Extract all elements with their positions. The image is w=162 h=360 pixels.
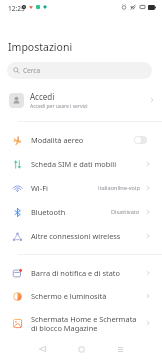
staticText: Schermo e luminosità xyxy=(31,291,142,301)
button[interactable]: Wi-Fi xyxy=(0,176,162,200)
staticText: Disattivato xyxy=(111,208,140,216)
staticText: Barra di notifica e di stato xyxy=(31,268,142,278)
button[interactable]: Schermo e luminosità xyxy=(0,284,162,308)
staticText: Accedi xyxy=(30,91,55,102)
button[interactable]: Modalità aereo toggle xyxy=(134,136,147,144)
button[interactable]: Modalità aereo xyxy=(0,128,162,152)
button[interactable]: Schermata Home e Schermata di blocco Mag… xyxy=(0,308,162,338)
button[interactable]: Cerca xyxy=(7,62,152,79)
button[interactable]: Accedi xyxy=(0,85,162,115)
staticText: Impostazioni xyxy=(8,40,73,54)
staticText: Modalità aereo xyxy=(31,135,131,145)
staticText: Scheda SIM e dati mobili xyxy=(31,159,142,169)
staticText: Altre connessioni wireless xyxy=(31,231,142,241)
button[interactable]: Back xyxy=(30,338,54,360)
staticText: Cerca xyxy=(23,66,41,75)
staticText: Bluetooth xyxy=(31,207,108,217)
staticText: italiaonline-voip xyxy=(98,184,140,192)
staticText: Schermata Home e Schermata di blocco Mag… xyxy=(31,314,142,333)
staticText: Wi-Fi xyxy=(31,183,95,193)
button[interactable]: Recents xyxy=(108,338,132,360)
button[interactable]: Home xyxy=(69,338,93,360)
button[interactable]: Scheda SIM e dati mobili xyxy=(0,152,162,176)
button[interactable]: Barra di notifica e di stato xyxy=(0,261,162,285)
button[interactable]: Altre connessioni wireless xyxy=(0,224,162,248)
staticText: Accedi per usare i servizi xyxy=(30,103,88,110)
button[interactable]: Bluetooth xyxy=(0,200,162,224)
staticText: 12:25 xyxy=(8,4,25,13)
